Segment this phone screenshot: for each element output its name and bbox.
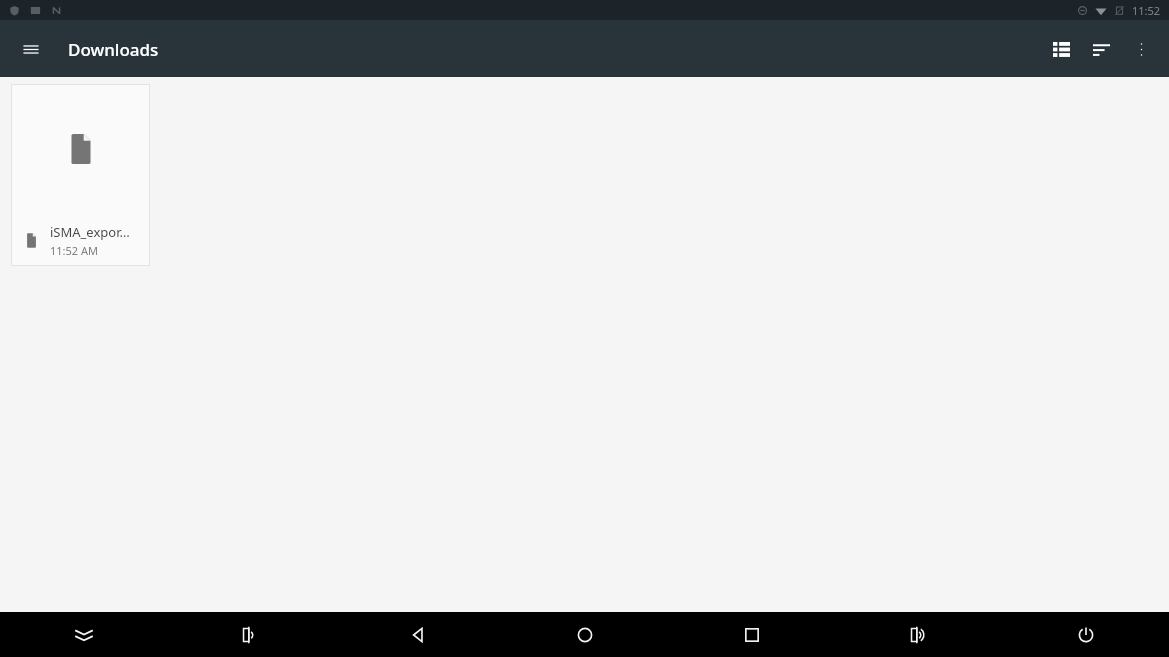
button[interactable]: Hide navigation bar [0,612,167,657]
button[interactable]: Home [501,612,668,657]
button[interactable]: Volume down [167,612,334,657]
button[interactable]: More options [1121,29,1161,69]
button[interactable]: Switch view [1041,29,1081,69]
button[interactable]: iSMA_expor… [11,84,150,266]
button[interactable]: Volume up [835,612,1002,657]
staticText: 11:52 AM [50,243,98,258]
button[interactable]: Open navigation drawer [14,32,48,66]
staticText: 11:52 [1132,3,1161,18]
button[interactable]: Power [1002,612,1169,657]
button[interactable]: Sort [1081,29,1121,69]
button[interactable]: Back [334,612,501,657]
staticText: Downloads [68,38,159,61]
staticText: iSMA_expor… [50,223,130,241]
button[interactable]: Recent apps [668,612,835,657]
